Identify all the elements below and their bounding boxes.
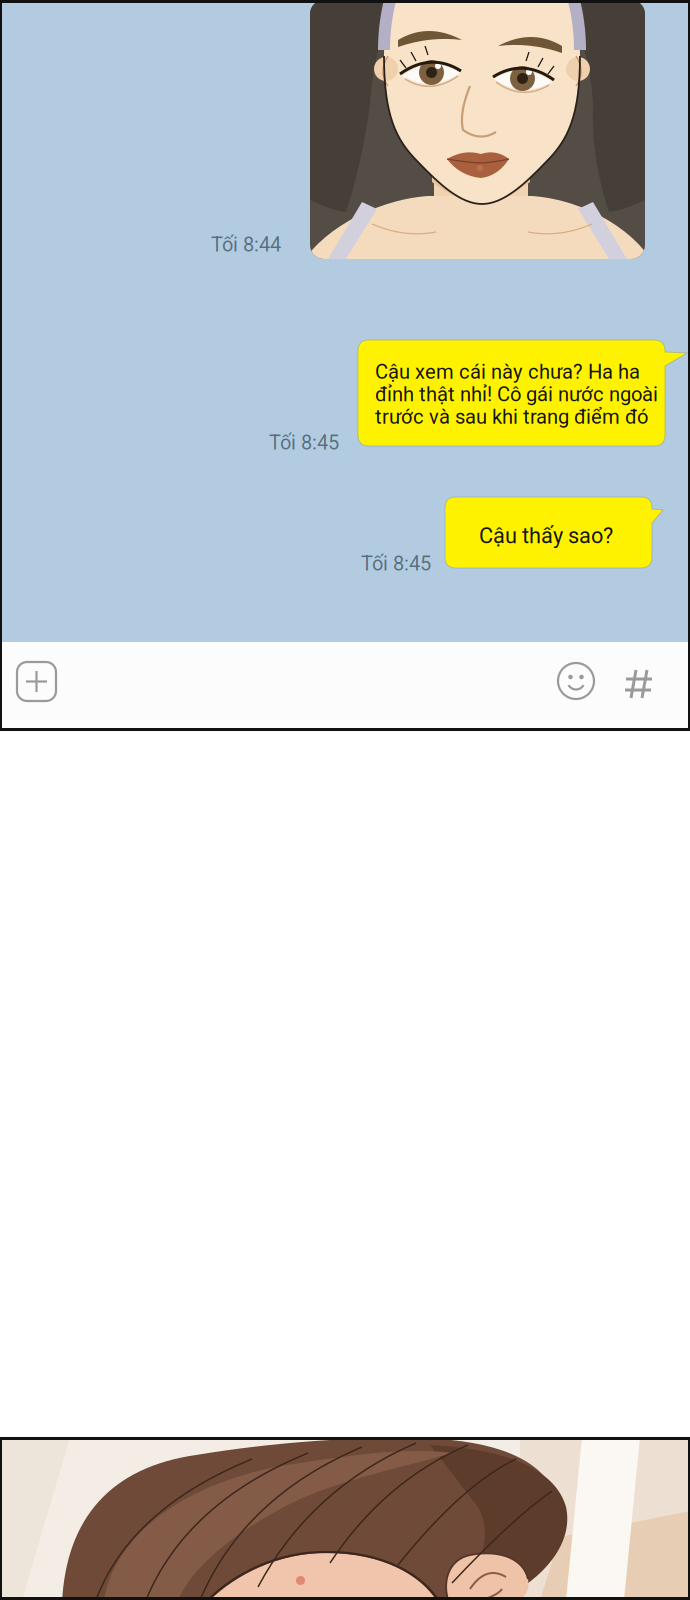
button[interactable]: Cậu thấy sao?: [445, 497, 663, 568]
staticText: đỉnh thật nhỉ! Cô gái nước ngoài: [375, 383, 658, 406]
staticText: Cậu xem cái này chưa? Ha ha: [375, 360, 640, 384]
staticText: Cậu thấy sao?: [479, 523, 613, 548]
button[interactable]: Photo attachment: [310, 0, 645, 259]
staticText: Tối 8:44: [211, 233, 281, 256]
button[interactable]: Emoji: [558, 663, 594, 699]
button[interactable]: Add attachment: [17, 662, 56, 701]
staticText: Tối 8:45: [361, 552, 431, 575]
button[interactable]: Hashtag: [623, 666, 655, 702]
button[interactable]: Cậu xem cái này chưa? Ha ha: [358, 340, 687, 446]
staticText: Tối 8:45: [269, 431, 339, 454]
staticText: trước và sau khi trang điểm đó: [375, 405, 648, 429]
